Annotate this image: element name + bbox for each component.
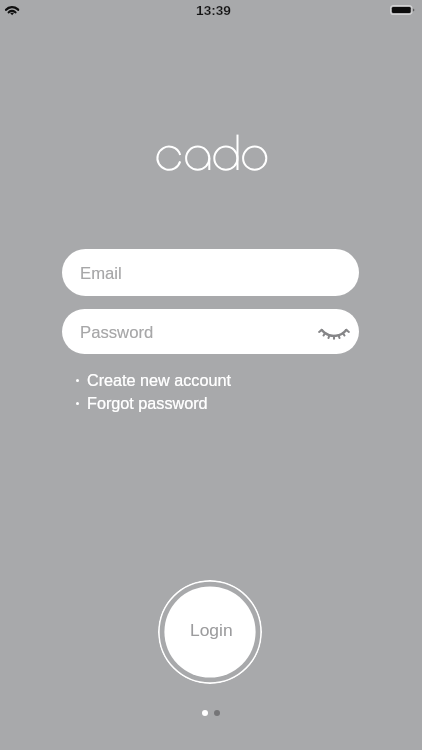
button[interactable]: Email [62, 249, 359, 296]
staticText: Forgot password [87, 394, 208, 412]
button[interactable]: Show password [318, 317, 350, 349]
staticText: Email [80, 264, 122, 283]
button[interactable]: Forgot password [76, 394, 208, 412]
button[interactable]: Password [62, 309, 359, 354]
other: Battery full [390, 5, 415, 15]
button[interactable]: Login [158, 580, 262, 684]
staticText: Create new account [87, 371, 231, 389]
staticText: 13:39 [196, 3, 231, 18]
staticText: Login [190, 620, 233, 639]
other: Wi-Fi [4, 3, 22, 18]
staticText: Password [80, 323, 154, 342]
button[interactable]: Create new account [76, 371, 231, 389]
